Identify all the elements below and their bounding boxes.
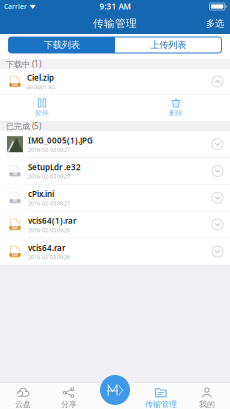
- staticText: Carrier: [4, 2, 27, 11]
- button[interactable]: 暂停: [22, 97, 62, 119]
- staticText: IMG_0005(1).JPG: [28, 135, 93, 146]
- staticText: vcis64(1).rar: [28, 215, 76, 226]
- button[interactable]: 多选: [200, 14, 230, 33]
- staticText: 传输管理: [93, 17, 137, 30]
- staticText: 我的: [199, 399, 215, 409]
- staticText: RAR: [12, 253, 18, 257]
- staticText: 69.0M/1.3G: [27, 83, 55, 91]
- staticText: 2016-02-03 09:26: [28, 227, 70, 234]
- staticText: 已完成 (5): [6, 121, 41, 131]
- staticText: 2016-02-03 09:27: [28, 173, 70, 180]
- staticText: vcis64.rar: [28, 242, 65, 253]
- staticText: INI: [13, 172, 17, 176]
- staticText: Ciel.zip: [27, 72, 54, 83]
- staticText: 9:31 AM: [99, 1, 130, 12]
- staticText: 暂停: [35, 109, 49, 117]
- staticText: 下载列表: [44, 39, 80, 51]
- staticText: 2016-02-03 09:27: [28, 200, 70, 207]
- staticText: cPix.ini: [28, 189, 54, 199]
- staticText: 云盘: [15, 399, 31, 409]
- button[interactable]: 云盘: [0, 382, 46, 409]
- staticText: 上传列表: [150, 39, 186, 51]
- staticText: 分享: [61, 399, 77, 409]
- staticText: 2016-02-03 09:26: [28, 254, 70, 261]
- staticText: 删除: [169, 109, 183, 117]
- staticText: RAR: [12, 83, 18, 86]
- button[interactable]: RAR: [0, 69, 230, 94]
- staticText: RAR: [12, 226, 18, 230]
- button[interactable]: 下载列表: [8, 37, 115, 53]
- button[interactable]: RAR: [0, 238, 230, 265]
- staticText: INI: [13, 199, 17, 203]
- button[interactable]: IMG_0005(1).JPG: [0, 131, 230, 158]
- button[interactable]: 传输: [98, 373, 132, 407]
- staticText: 多选: [206, 18, 224, 29]
- button[interactable]: 分享: [46, 382, 92, 409]
- staticText: 下载中 (1): [6, 59, 41, 69]
- button[interactable]: RAR: [0, 211, 230, 238]
- staticText: 传输管理: [145, 399, 177, 409]
- button[interactable]: INI: [0, 185, 230, 211]
- button[interactable]: 传输管理: [138, 382, 184, 409]
- staticText: 2016-02-03 09:27: [28, 146, 70, 153]
- button[interactable]: INI: [0, 158, 230, 185]
- button[interactable]: 上传列表: [115, 37, 221, 53]
- button[interactable]: 我的: [184, 382, 230, 409]
- staticText: SetupLdr .e32: [28, 162, 81, 172]
- button[interactable]: 删除: [156, 97, 196, 119]
